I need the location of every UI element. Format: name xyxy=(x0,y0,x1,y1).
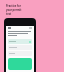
button[interactable] xyxy=(8,58,32,70)
button[interactable] xyxy=(8,39,32,44)
staticText: Practice for your permit test xyxy=(6,4,27,16)
button[interactable] xyxy=(8,45,32,50)
button[interactable] xyxy=(8,51,32,56)
